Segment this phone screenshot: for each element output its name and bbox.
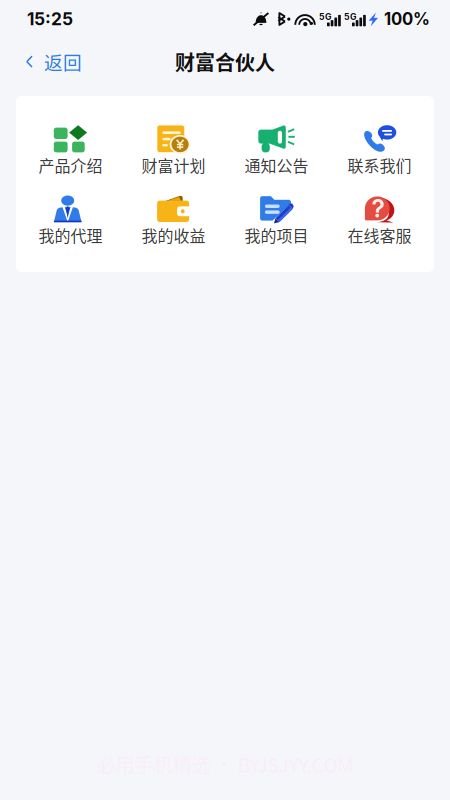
staticText: 通知公告 <box>244 153 308 177</box>
staticText: 我的代理 <box>38 223 102 247</box>
staticText: 100% <box>384 9 430 29</box>
staticText: 5G <box>344 12 357 22</box>
button[interactable]: 通知公告 <box>225 116 328 186</box>
staticText: 联系我们 <box>347 153 411 177</box>
button[interactable]: 我的收益 <box>122 186 225 256</box>
staticText: 财富计划 <box>141 153 205 177</box>
button[interactable]: 财富计划 <box>122 116 225 186</box>
staticText: 在线客服 <box>347 223 411 247</box>
button[interactable]: 产品介绍 <box>19 116 122 186</box>
button[interactable]: 在线客服 <box>328 186 431 256</box>
staticText: 15:25 <box>27 8 73 29</box>
button[interactable]: 返回 <box>0 39 96 83</box>
button[interactable]: 我的项目 <box>225 186 328 256</box>
staticText: 财富合伙人 <box>175 47 275 76</box>
button[interactable]: 联系我们 <box>328 116 431 186</box>
button[interactable]: 我的代理 <box>19 186 122 256</box>
staticText: 必用手机精选 · BYJSJYY.COM <box>96 750 353 778</box>
staticText: 我的项目 <box>244 223 308 247</box>
staticText: 5G <box>319 12 332 22</box>
staticText: 我的收益 <box>141 223 205 247</box>
staticText: 产品介绍 <box>38 153 102 177</box>
staticText: 返回 <box>44 48 82 75</box>
